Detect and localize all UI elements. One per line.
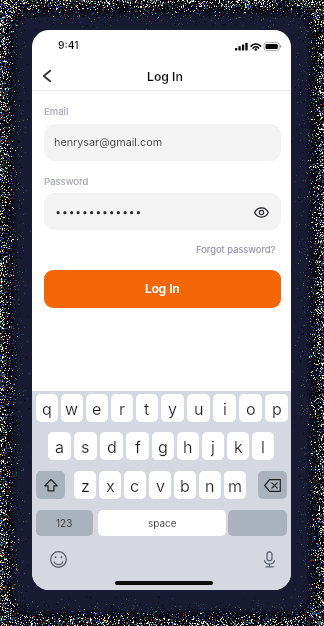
button[interactable]: c: [124, 471, 146, 499]
button[interactable]: g: [152, 432, 174, 460]
staticText: a: [55, 437, 64, 456]
button[interactable]: t: [136, 394, 158, 422]
button[interactable]: l: [252, 432, 274, 460]
staticText: 9:41: [58, 39, 79, 51]
button[interactable]: Back: [34, 63, 60, 89]
button[interactable]: b: [174, 471, 196, 499]
button[interactable]: y: [161, 394, 184, 422]
button[interactable]: f: [126, 432, 149, 460]
button[interactable]: Dictate: [257, 547, 281, 571]
button[interactable]: Forgot password?: [196, 244, 276, 255]
staticText: l: [261, 437, 265, 456]
staticText: i: [223, 399, 227, 418]
button[interactable]: 123: [36, 510, 93, 536]
staticText: space: [148, 517, 177, 529]
button[interactable]: q: [36, 394, 58, 422]
staticText: t: [144, 399, 150, 418]
button[interactable]: Return: [228, 510, 287, 536]
staticText: Email: [44, 106, 69, 118]
staticText: n: [205, 476, 215, 495]
button[interactable]: Backspace: [258, 471, 287, 499]
button[interactable]: k: [227, 432, 249, 460]
button[interactable]: r: [111, 394, 133, 422]
button[interactable]: space: [98, 510, 226, 536]
staticText: h: [183, 437, 193, 456]
staticText: d: [107, 437, 117, 456]
staticText: m: [228, 476, 243, 495]
staticText: •••••••••••••: [55, 205, 142, 218]
staticText: x: [106, 476, 115, 495]
staticText: y: [168, 399, 177, 418]
button[interactable]: v: [149, 471, 171, 499]
button[interactable]: m: [224, 471, 246, 499]
staticText: Log In: [145, 282, 180, 296]
button[interactable]: z: [74, 471, 96, 499]
button[interactable]: n: [199, 471, 221, 499]
button[interactable]: u: [187, 394, 210, 422]
other: Backspace: [264, 479, 281, 492]
staticText: Password: [44, 176, 89, 188]
staticText: Log In: [147, 69, 183, 84]
button[interactable]: henrysar@gmail.com: [44, 124, 281, 161]
staticText: c: [130, 476, 140, 495]
button[interactable]: •••••••••••••: [44, 193, 281, 230]
staticText: s: [81, 437, 90, 456]
staticText: r: [119, 399, 126, 418]
staticText: w: [65, 399, 79, 418]
other: Shift: [44, 478, 58, 493]
button[interactable]: h: [177, 432, 199, 460]
staticText: g: [158, 437, 168, 456]
button[interactable]: Show password: [249, 200, 273, 224]
button[interactable]: x: [99, 471, 121, 499]
button[interactable]: d: [100, 432, 123, 460]
button[interactable]: i: [213, 394, 236, 422]
staticText: b: [180, 476, 190, 495]
staticText: z: [81, 476, 90, 495]
button[interactable]: Shift: [36, 471, 65, 499]
button[interactable]: e: [86, 394, 108, 422]
staticText: o: [246, 399, 256, 418]
staticText: p: [272, 399, 282, 418]
button[interactable]: Log In: [44, 270, 281, 308]
button[interactable]: o: [239, 394, 262, 422]
staticText: j: [211, 437, 215, 456]
staticText: e: [92, 399, 102, 418]
staticText: f: [135, 437, 141, 456]
staticText: q: [42, 399, 52, 418]
staticText: u: [194, 399, 204, 418]
staticText: k: [234, 437, 243, 456]
button[interactable]: Emoji keyboard: [46, 547, 70, 571]
button[interactable]: a: [48, 432, 71, 460]
staticText: v: [156, 476, 165, 495]
button[interactable]: j: [202, 432, 224, 460]
button[interactable]: w: [61, 394, 83, 422]
staticText: 123: [56, 517, 73, 529]
staticText: henrysar@gmail.com: [54, 136, 163, 149]
button[interactable]: s: [74, 432, 97, 460]
button[interactable]: p: [265, 394, 288, 422]
